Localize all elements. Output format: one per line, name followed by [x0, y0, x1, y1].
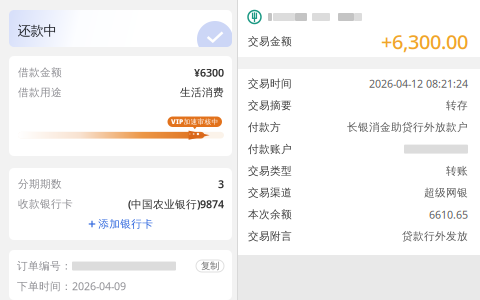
- staticText: 复制: [201, 260, 219, 272]
- staticText: 交易渠道: [248, 186, 292, 199]
- staticText: 交易摘要: [248, 99, 292, 112]
- staticText: 分期期数: [18, 177, 62, 190]
- staticText: 订单编号：: [17, 259, 72, 272]
- staticText: 贷款行外发放: [402, 230, 468, 243]
- staticText: +6,300.00: [381, 28, 468, 55]
- staticText: ¥6300: [194, 65, 224, 80]
- staticText: 2026-04-12 08:21:24: [369, 77, 468, 91]
- staticText: 交易金额: [248, 35, 292, 48]
- staticText: 交易附言: [248, 230, 292, 243]
- staticText: 收款银行卡: [18, 197, 73, 210]
- staticText: 添加银行卡: [98, 217, 153, 230]
- button[interactable]: 添加银行卡: [18, 214, 224, 234]
- staticText: 还款中: [17, 22, 56, 39]
- staticText: 借款金额: [18, 66, 62, 79]
- button[interactable]: 复制: [196, 260, 224, 272]
- staticText: 6610.65: [429, 207, 468, 222]
- staticText: 超级网银: [424, 186, 468, 199]
- staticText: 转账: [446, 164, 468, 177]
- staticText: 下单时间：2026-04-09: [17, 279, 126, 293]
- staticText: 本次余额: [248, 208, 292, 221]
- staticText: 生活消费: [180, 86, 224, 99]
- staticText: 交易时间: [248, 77, 292, 90]
- staticText: 付款账户: [248, 142, 292, 156]
- staticText: 3: [218, 177, 224, 191]
- staticText: 转存: [446, 99, 468, 112]
- staticText: 借款用途: [18, 86, 62, 99]
- staticText: VIP: [171, 117, 183, 126]
- staticText: 付款方: [248, 121, 281, 134]
- staticText: 长银消金助贷行外放款户: [347, 121, 468, 134]
- staticText: 加速审核中: [183, 118, 218, 126]
- staticText: 交易类型: [248, 164, 292, 177]
- staticText: (中国农业银行)9874: [128, 197, 224, 211]
